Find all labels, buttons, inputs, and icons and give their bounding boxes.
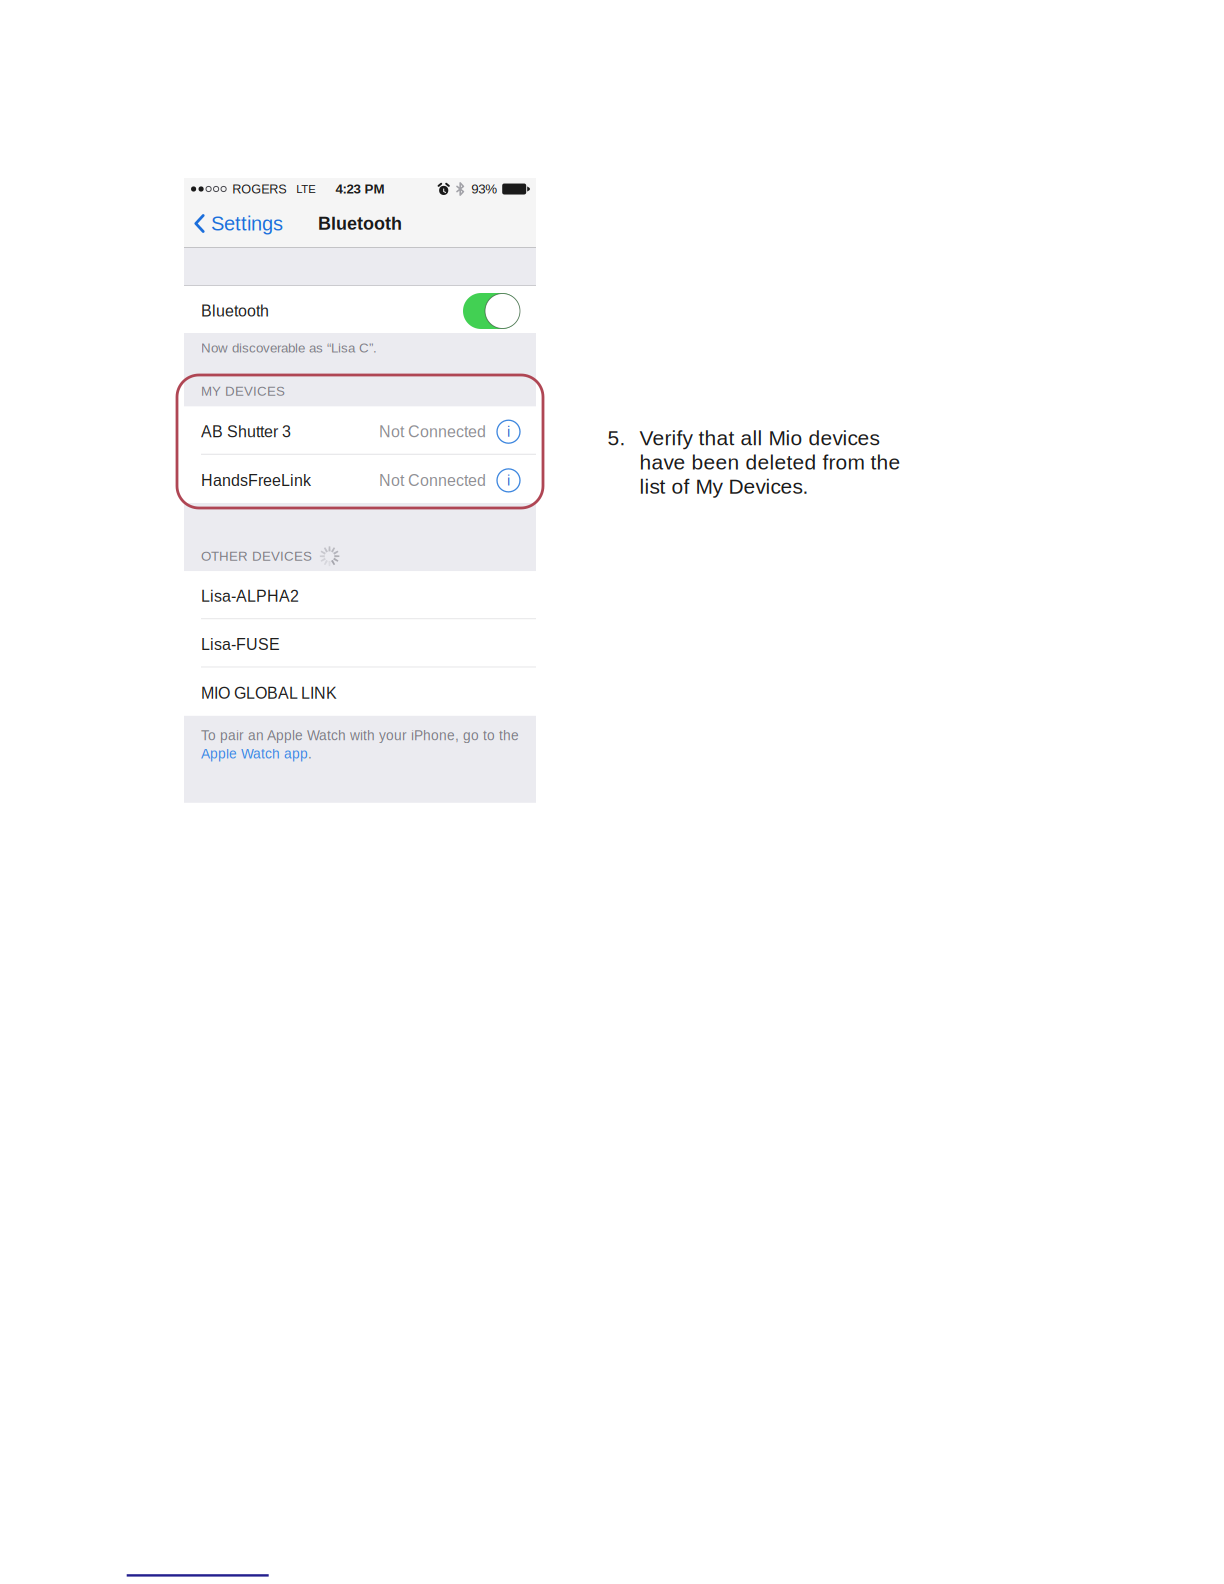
button[interactable]: AB Shutter 3 bbox=[184, 407, 536, 455]
staticText: Not Connected bbox=[379, 423, 486, 441]
staticText: 5. bbox=[607, 426, 625, 450]
staticText: Lisa-FUSE bbox=[201, 636, 280, 653]
staticText: AB Shutter 3 bbox=[201, 423, 291, 441]
staticText: Lisa-ALPHA2 bbox=[201, 587, 299, 605]
staticText: Apple Watch app bbox=[201, 746, 308, 761]
staticText: ROGERS bbox=[232, 182, 286, 196]
staticText: MIO GLOBAL LINK bbox=[201, 684, 337, 702]
button[interactable]: Settings bbox=[184, 200, 291, 247]
staticText: 4:23 PM bbox=[335, 182, 384, 196]
staticText: OTHER DEVICES bbox=[201, 549, 312, 564]
button[interactable]: Lisa-ALPHA2 bbox=[184, 571, 536, 619]
button[interactable]: Bluetooth bbox=[463, 293, 520, 329]
staticText: To pair an Apple Watch with your iPhone,… bbox=[201, 728, 519, 743]
button[interactable]: MIO GLOBAL LINK bbox=[184, 668, 536, 716]
button[interactable]: Apple Watch app bbox=[201, 746, 312, 761]
staticText: . bbox=[308, 746, 312, 761]
staticText: have been deleted from the bbox=[639, 451, 900, 474]
staticText: HandsFreeLink bbox=[201, 471, 311, 489]
staticText: list of My Devices. bbox=[639, 475, 808, 498]
button[interactable]: Lisa-FUSE bbox=[184, 619, 536, 668]
staticText: Now discoverable as “Lisa C”. bbox=[201, 340, 377, 355]
staticText: Settings bbox=[211, 212, 283, 235]
staticText: Bluetooth bbox=[318, 213, 402, 233]
staticText: Verify that all Mio devices bbox=[639, 426, 879, 450]
staticText: i bbox=[507, 472, 510, 489]
staticText: i bbox=[507, 423, 510, 440]
staticText: 93% bbox=[471, 182, 497, 196]
button[interactable]: HandsFreeLink bbox=[184, 455, 536, 503]
staticText: MY DEVICES bbox=[201, 384, 285, 399]
staticText: Bluetooth bbox=[201, 302, 269, 320]
staticText: Not Connected bbox=[379, 471, 486, 489]
staticText: LTE bbox=[296, 183, 316, 195]
